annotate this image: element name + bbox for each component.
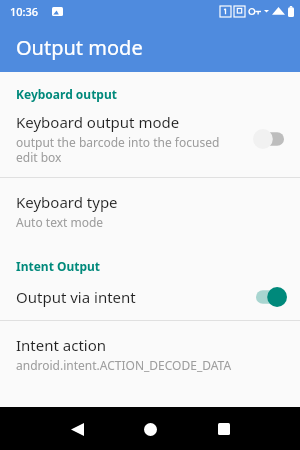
staticText: android.intent.ACTION_DECODE_DATA — [16, 357, 232, 373]
staticText: 10:36 — [10, 4, 39, 19]
button[interactable]: Back — [62, 414, 92, 444]
staticText: Intent Output — [16, 258, 101, 274]
button[interactable]: Keyboard output mode — [0, 112, 300, 165]
button[interactable]: Keyboard type — [0, 192, 300, 230]
staticText: Keyboard type — [16, 192, 118, 212]
button[interactable]: Intent action — [0, 335, 300, 373]
button[interactable]: On — [252, 286, 288, 308]
button[interactable]: Recent apps — [209, 414, 239, 444]
button[interactable]: Output via intent — [0, 286, 300, 308]
staticText: Auto text mode — [16, 214, 104, 230]
staticText: output the barcode into the focused edit… — [16, 134, 220, 165]
staticText: Output mode — [16, 34, 143, 61]
staticText: Output via intent — [16, 287, 136, 307]
button[interactable]: Home — [135, 414, 165, 444]
staticText: Keyboard output mode — [16, 112, 180, 132]
staticText: Keyboard output — [16, 86, 117, 102]
staticText: Intent action — [16, 335, 107, 355]
button[interactable]: Off — [252, 128, 288, 150]
